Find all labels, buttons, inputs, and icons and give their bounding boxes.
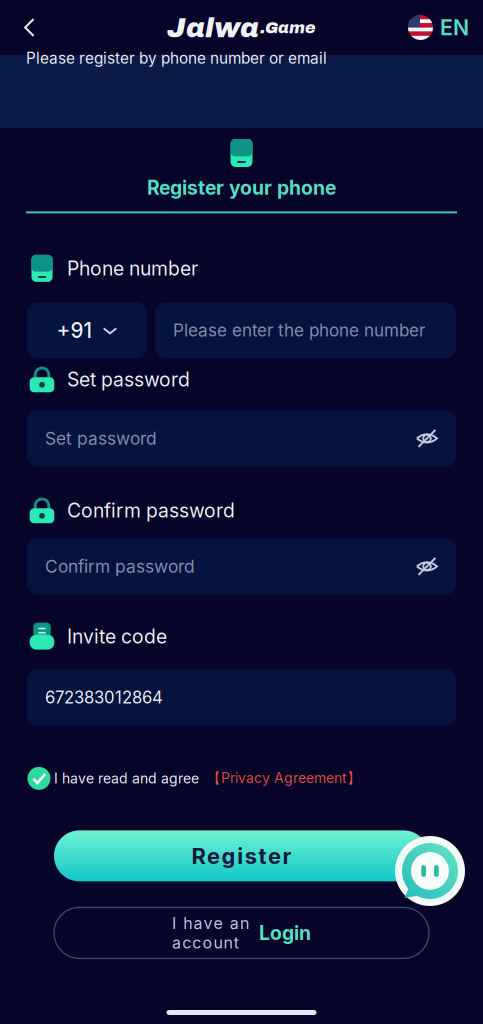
staticText: Register your phone [147, 176, 336, 199]
staticText: Register [191, 843, 292, 869]
staticText: .Game [260, 19, 316, 37]
button[interactable]: Show password [414, 425, 440, 451]
staticText: Confirm password [45, 556, 195, 577]
staticText: Set password [45, 428, 157, 449]
staticText: Invite code [67, 625, 167, 648]
button[interactable]: Back [6, 2, 54, 52]
staticText: I have an account [172, 913, 249, 952]
staticText: Please register by phone number or email [26, 49, 327, 68]
staticText: Set password [67, 368, 190, 391]
button[interactable]: Customer support [395, 836, 465, 906]
staticText: +91 [56, 318, 91, 343]
button[interactable]: Language: English [400, 2, 477, 52]
button[interactable]: Register [54, 830, 429, 881]
staticText: EN [440, 15, 469, 40]
staticText: I have read and agree [54, 770, 199, 787]
staticText: Login [259, 921, 311, 945]
staticText: 672383012864 [45, 687, 163, 707]
button[interactable]: Country code +91 [27, 302, 147, 358]
button[interactable]: I have read and agree [24, 763, 54, 793]
button[interactable]: I have an account [54, 907, 429, 958]
staticText: 【Privacy Agreement】 [207, 769, 361, 787]
staticText: Please enter the phone number [173, 320, 425, 341]
staticText: Confirm password [67, 499, 235, 522]
button[interactable]: Show password [414, 553, 440, 579]
staticText: Phone number [67, 257, 198, 280]
button[interactable]: 【Privacy Agreement】 [199, 769, 361, 787]
staticText: Jalwa [167, 13, 259, 43]
